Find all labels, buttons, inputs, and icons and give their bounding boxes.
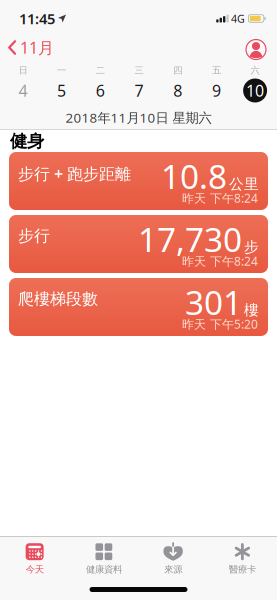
staticText: 昨天 下午8:24 bbox=[182, 190, 258, 206]
staticText: 來源 bbox=[164, 564, 182, 575]
staticText: 10 bbox=[246, 80, 264, 101]
button[interactable]: 醫療卡 bbox=[208, 543, 277, 575]
button[interactable]: 健康資料 bbox=[69, 543, 138, 575]
button[interactable]: 11月6日 bbox=[81, 76, 120, 104]
staticText: 9 bbox=[212, 80, 221, 101]
staticText: 17,730 bbox=[138, 217, 242, 261]
staticText: 健身 bbox=[10, 131, 44, 152]
staticText: 昨天 下午8:24 bbox=[182, 253, 258, 269]
button[interactable]: 來源 bbox=[138, 543, 208, 575]
staticText: 7 bbox=[134, 80, 143, 101]
staticText: 步行 bbox=[18, 226, 50, 246]
button[interactable]: 11月4日 bbox=[4, 76, 42, 104]
staticText: 6 bbox=[96, 80, 105, 101]
button[interactable]: 11月5日 bbox=[42, 76, 81, 104]
button[interactable]: 步行 + 跑步距離 10.8 公里 bbox=[0, 152, 277, 210]
button[interactable]: 11月9日 bbox=[197, 76, 236, 104]
button[interactable]: 健康檔案 bbox=[246, 35, 277, 59]
staticText: 301 bbox=[185, 280, 242, 324]
button[interactable]: 11月8日 bbox=[158, 76, 197, 104]
staticText: 10.8 bbox=[161, 154, 227, 198]
staticText: 2018年11月10日 星期六 bbox=[65, 109, 211, 126]
button[interactable]: 步行 17,730 步 bbox=[0, 215, 277, 273]
staticText: 四 bbox=[173, 65, 182, 76]
button[interactable]: 返回 11月 bbox=[0, 37, 54, 58]
staticText: 昨天 下午5:20 bbox=[182, 316, 258, 332]
staticText: 爬樓梯段數 bbox=[18, 289, 98, 309]
staticText: 日 bbox=[18, 65, 27, 76]
staticText: 五 bbox=[212, 65, 221, 76]
button[interactable]: 11月7日 bbox=[120, 76, 158, 104]
staticText: 三 bbox=[134, 65, 143, 76]
button[interactable]: 今天 bbox=[0, 543, 69, 575]
staticText: 11:45 bbox=[19, 9, 55, 28]
staticText: 樓 bbox=[244, 301, 259, 319]
staticText: 公里 bbox=[229, 175, 259, 193]
staticText: 步行 + 跑步距離 bbox=[18, 163, 131, 184]
button[interactable]: 11月10日 bbox=[236, 76, 274, 104]
staticText: 醫療卡 bbox=[229, 564, 256, 575]
staticText: 今天 bbox=[26, 564, 44, 575]
staticText: 11月 bbox=[20, 37, 54, 58]
staticText: 二 bbox=[96, 65, 105, 76]
staticText: 4 bbox=[18, 80, 27, 101]
staticText: 5 bbox=[57, 80, 66, 101]
button[interactable]: 爬樓梯段數 301 樓 bbox=[0, 278, 277, 336]
staticText: 健康資料 bbox=[86, 564, 122, 575]
staticText: 8 bbox=[173, 80, 182, 101]
staticText: 步 bbox=[244, 238, 259, 256]
staticText: 六 bbox=[251, 65, 260, 76]
staticText: 一 bbox=[57, 65, 66, 76]
staticText: 4G bbox=[231, 11, 245, 26]
